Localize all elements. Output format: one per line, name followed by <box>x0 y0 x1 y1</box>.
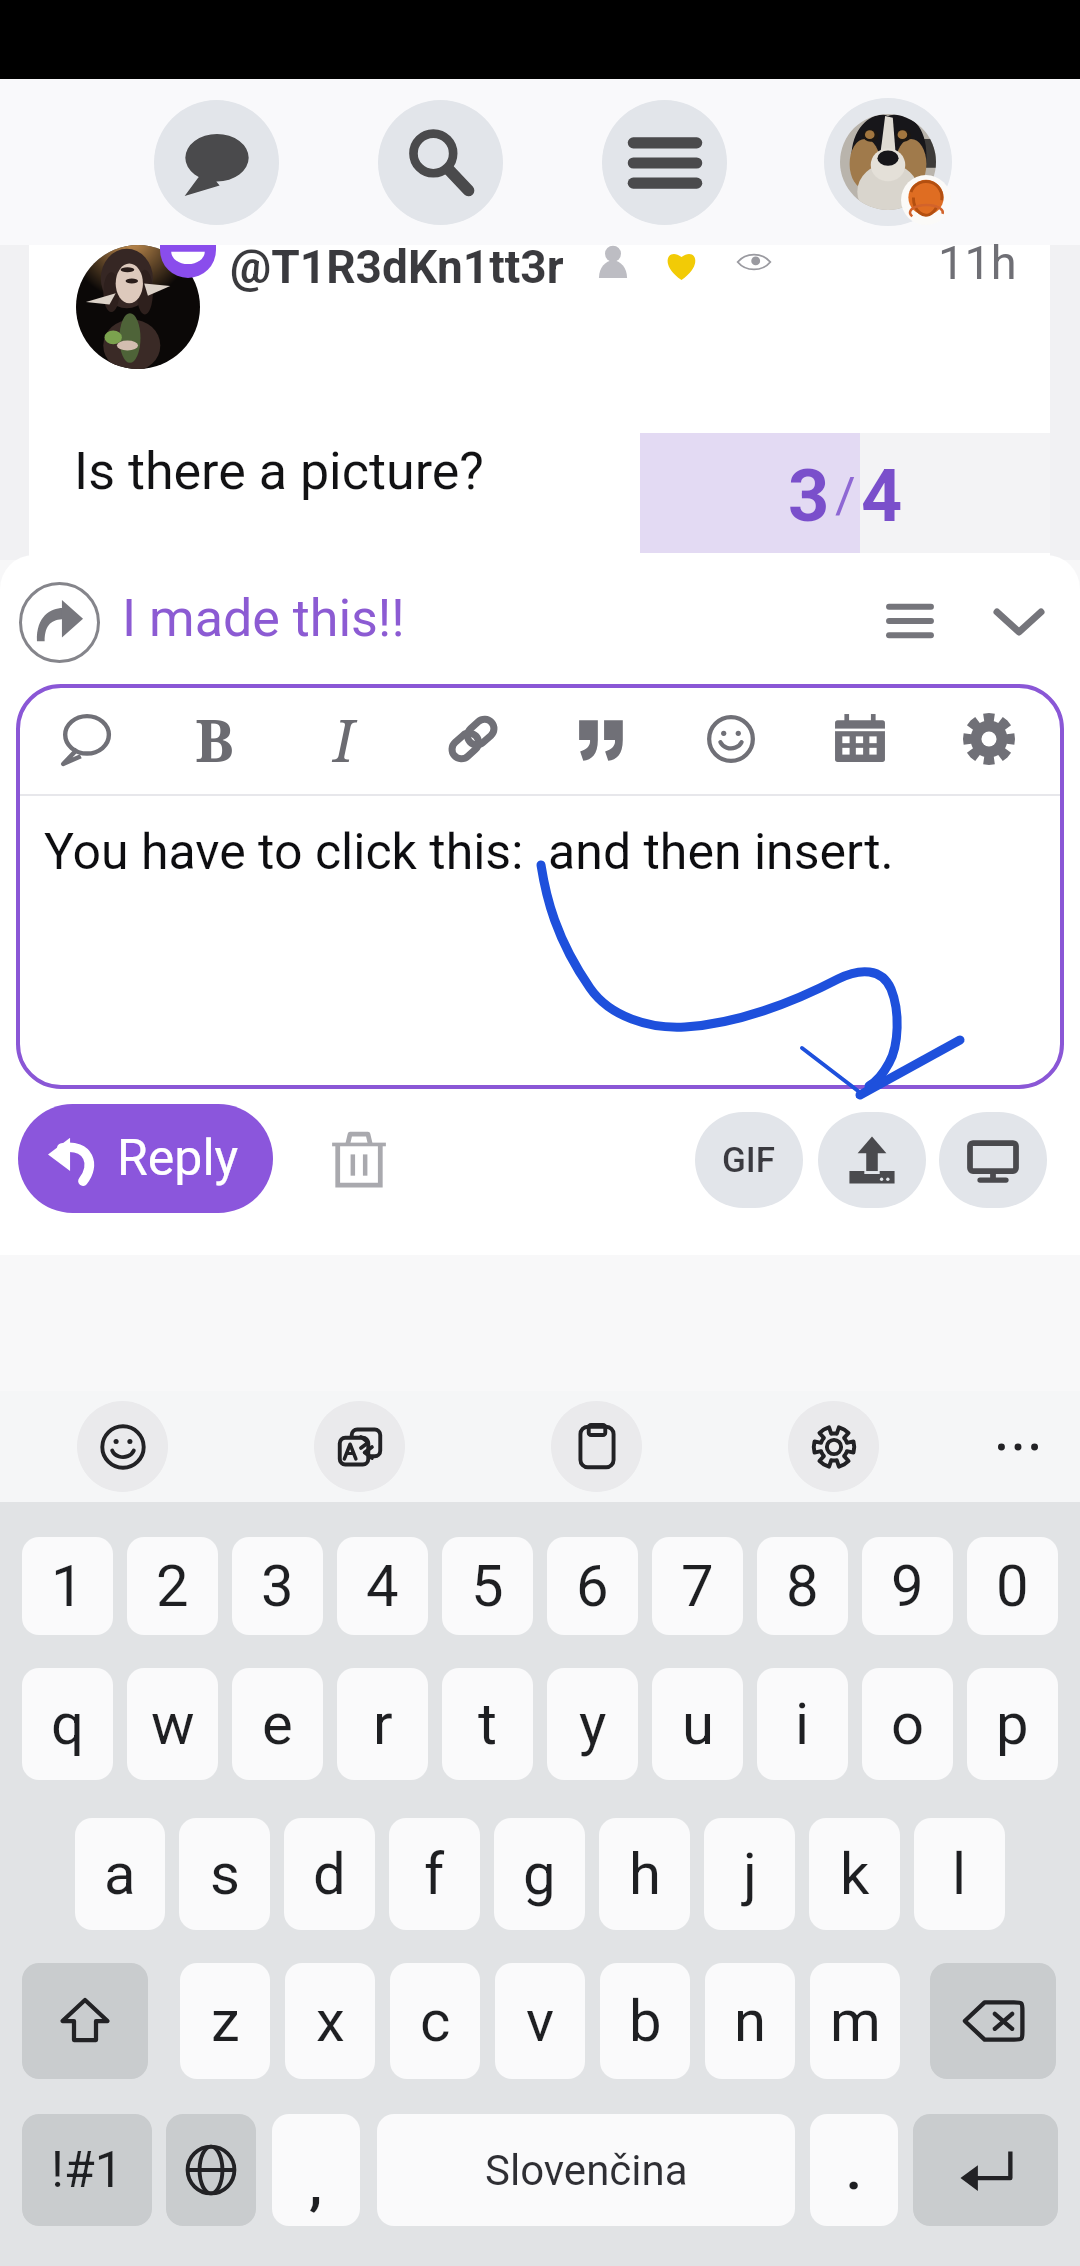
button[interactable]: Messages <box>154 100 279 225</box>
button[interactable]: Options <box>874 585 946 657</box>
button[interactable]: Settings <box>924 685 1053 793</box>
staticText: g <box>523 1840 556 1908</box>
button[interactable]: a <box>75 1818 165 1930</box>
button[interactable]: k <box>809 1818 900 1930</box>
button[interactable]: i <box>757 1668 848 1780</box>
staticText: Is there a picture? <box>74 441 484 502</box>
staticText: i <box>795 1690 810 1758</box>
button[interactable]: Collapse <box>983 585 1055 657</box>
staticText: n <box>734 1987 767 2055</box>
button[interactable]: Translate <box>314 1401 405 1492</box>
button[interactable]: x <box>285 1963 375 2079</box>
button[interactable]: 1 <box>22 1537 113 1635</box>
button[interactable]: 3 <box>232 1537 323 1635</box>
button[interactable]: o <box>862 1668 953 1780</box>
staticText: . <box>846 2139 862 2202</box>
button[interactable]: Shift <box>22 1963 148 2079</box>
staticText: GIF <box>722 1140 776 1181</box>
button[interactable]: More options <box>972 1401 1063 1492</box>
button[interactable]: !#1 <box>22 2114 152 2226</box>
button[interactable]: Clipboard <box>551 1401 642 1492</box>
button[interactable]: Slovenčina <box>377 2114 795 2226</box>
staticText: c <box>420 1987 451 2055</box>
button[interactable]: p <box>967 1668 1058 1780</box>
button[interactable]: Menu <box>602 100 727 225</box>
button[interactable]: 7 <box>652 1537 743 1635</box>
button[interactable]: . <box>810 2114 898 2226</box>
button[interactable]: 6 <box>547 1537 638 1635</box>
button[interactable]: f <box>389 1818 480 1930</box>
staticText: 1 <box>51 1552 84 1620</box>
button[interactable]: c <box>390 1963 480 2079</box>
button[interactable]: 4 <box>337 1537 428 1635</box>
button[interactable]: Upload <box>818 1112 926 1208</box>
button[interactable]: Search <box>378 100 503 225</box>
button[interactable]: Reply <box>48 1104 238 1213</box>
button[interactable]: Author avatar <box>76 245 200 369</box>
staticText: , <box>309 2153 323 2216</box>
button[interactable]: z <box>180 1963 270 2079</box>
button[interactable]: y <box>547 1668 638 1780</box>
staticText: r <box>373 1690 393 1758</box>
button[interactable]: Emoji <box>77 1401 168 1492</box>
button[interactable]: Reply target <box>19 582 100 663</box>
button[interactable]: 2 <box>127 1537 218 1635</box>
staticText: z <box>211 1987 240 2055</box>
button[interactable]: l <box>914 1818 1005 1930</box>
staticText: 2 <box>156 1552 189 1620</box>
button[interactable]: j <box>704 1818 795 1930</box>
staticText: Reply <box>117 1129 238 1188</box>
button[interactable]: 8 <box>757 1537 848 1635</box>
button[interactable]: d <box>284 1818 375 1930</box>
button[interactable]: v <box>495 1963 585 2079</box>
button[interactable]: Enter <box>913 2114 1058 2226</box>
button[interactable]: q <box>22 1668 113 1780</box>
staticText: @T1R3dKn1tt3r <box>230 240 564 294</box>
button[interactable]: 9 <box>862 1537 953 1635</box>
button[interactable]: , <box>272 2114 360 2226</box>
staticText: Slovenčina <box>485 2146 688 2195</box>
button[interactable]: I <box>279 685 408 793</box>
button[interactable]: w <box>127 1668 218 1780</box>
staticText: 4 <box>861 454 903 538</box>
button[interactable]: r <box>337 1668 428 1780</box>
button[interactable]: s <box>179 1818 270 1930</box>
staticText: / <box>835 467 856 526</box>
button[interactable]: 0 <box>967 1537 1058 1635</box>
button[interactable]: GIF <box>695 1112 803 1208</box>
staticText: 3 <box>788 454 830 538</box>
button[interactable]: 5 <box>442 1537 533 1635</box>
staticText: 4 <box>366 1552 399 1620</box>
button[interactable]: Link <box>408 685 537 793</box>
button[interactable]: Backspace <box>930 1963 1056 2079</box>
button[interactable]: b <box>600 1963 690 2079</box>
button[interactable]: Delete <box>324 1125 394 1195</box>
button[interactable]: g <box>494 1818 585 1930</box>
button[interactable]: Quote <box>537 685 666 793</box>
button[interactable]: u <box>652 1668 743 1780</box>
staticText: d <box>313 1840 346 1908</box>
staticText: u <box>682 1690 714 1758</box>
button[interactable]: m <box>810 1963 900 2079</box>
staticText: j <box>743 1840 757 1908</box>
button[interactable]: Calendar <box>795 685 924 793</box>
staticText: l <box>952 1840 967 1908</box>
button[interactable]: Emoji <box>666 685 795 793</box>
button[interactable]: e <box>232 1668 323 1780</box>
button[interactable]: Profile <box>840 114 936 210</box>
button[interactable]: n <box>705 1963 795 2079</box>
staticText: B <box>195 700 234 779</box>
button[interactable]: Change language <box>166 2114 256 2226</box>
staticText: 7 <box>681 1552 714 1620</box>
button[interactable]: B <box>150 685 279 793</box>
staticText: !#1 <box>51 2141 123 2200</box>
button[interactable]: t <box>442 1668 533 1780</box>
staticText: e <box>262 1690 293 1758</box>
staticText: m <box>830 1987 881 2055</box>
button[interactable]: h <box>599 1818 690 1930</box>
button[interactable]: Settings <box>788 1401 879 1492</box>
staticText: x <box>316 1987 345 2055</box>
staticText: 3 <box>261 1552 294 1620</box>
button[interactable]: Comment <box>21 685 150 793</box>
button[interactable]: Screen capture <box>939 1112 1047 1208</box>
